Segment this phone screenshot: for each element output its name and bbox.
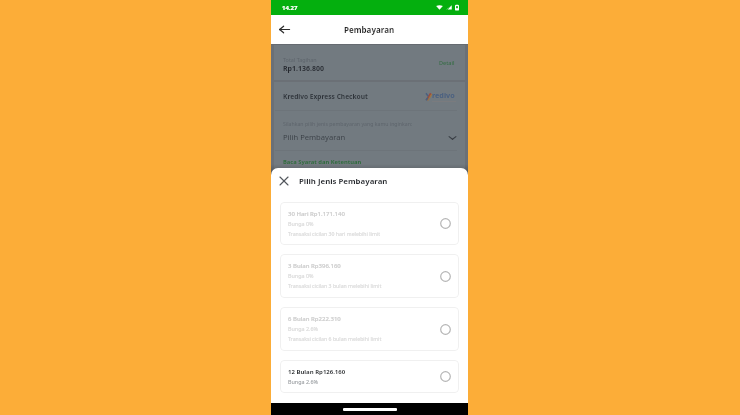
staticText: 30 Hari Rp1.171.140 [288, 210, 345, 218]
staticText: Silahkan pilih jenis pembayaran yang kam… [283, 120, 413, 127]
staticText: Detail [439, 59, 455, 66]
staticText: 3 Bulan Rp396.160 [288, 262, 341, 270]
staticText: 12 Bulan Rp126.160 [288, 368, 346, 376]
staticText: Bunga 0% [288, 272, 314, 279]
staticText: Pilih Pembayaran [283, 132, 346, 142]
staticText: Bunga 2.6% [288, 378, 318, 385]
staticText: 6 Bulan Rp222.310 [288, 315, 341, 323]
staticText: Kredivo Express Checkout [283, 92, 368, 101]
staticText: Bunga 2.6% [288, 325, 318, 332]
button[interactable]: Close [277, 174, 291, 188]
staticText: Rp1.136.800 [283, 64, 324, 74]
staticText: Transaksi cicilan 6 bulan melebihi limit [288, 335, 382, 342]
button[interactable]: Pilih Pembayaran [274, 132, 465, 142]
button[interactable]: Detail [435, 56, 459, 69]
button[interactable]: Back [276, 21, 293, 38]
staticText: 14.27 [282, 4, 298, 12]
button[interactable]: 3 Bulan Rp396.160 [280, 254, 459, 298]
staticText: redivo [432, 90, 455, 100]
staticText: Transaksi cicilan 30 hari melebihi limit [288, 230, 381, 237]
staticText: Transaksi cicilan 3 bulan melebihi limit [288, 282, 382, 289]
staticText: Pilih Jenis Pembayaran [299, 176, 388, 187]
staticText: Total Tagihan [283, 56, 317, 63]
button[interactable]: 30 Hari Rp1.171.140 [280, 202, 459, 245]
staticText: Bunga 0% [288, 220, 314, 227]
button[interactable]: Baca Syarat dan Ketentuan [280, 155, 365, 169]
staticText: Baca Syarat dan Ketentuan [283, 158, 362, 166]
button[interactable]: 6 Bulan Rp222.310 [280, 307, 459, 351]
staticText: Pembayaran [344, 24, 395, 35]
button[interactable]: 12 Bulan Rp126.160 [280, 360, 459, 393]
